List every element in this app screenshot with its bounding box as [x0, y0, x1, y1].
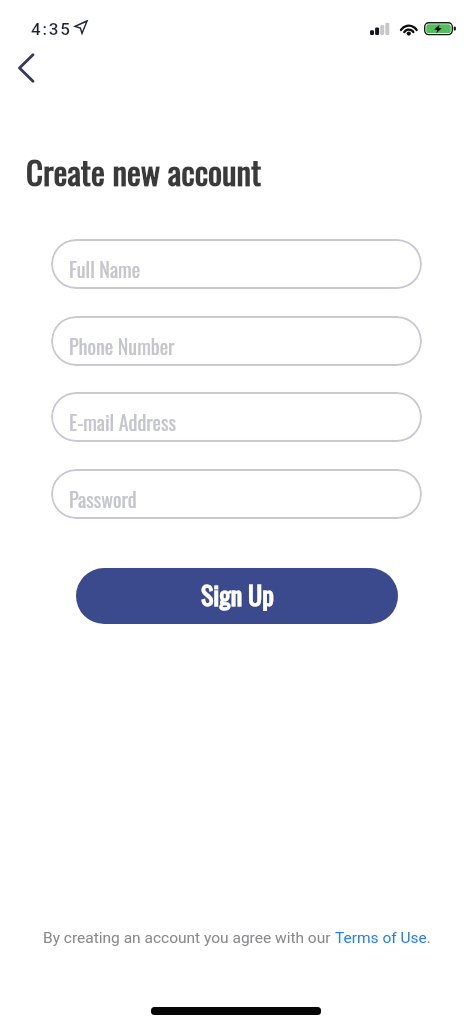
staticText: Password	[69, 484, 137, 514]
button[interactable]: Password	[51, 469, 422, 519]
staticText: By creating an account you agree with ou…	[43, 929, 335, 947]
staticText: Sign Up	[201, 575, 274, 614]
button[interactable]: Full Name	[51, 239, 422, 289]
button[interactable]: Phone Number	[51, 316, 422, 366]
button[interactable]: E-mail Address	[51, 392, 422, 442]
button[interactable]: Sign Up	[76, 568, 398, 624]
staticText: E-mail Address	[69, 407, 176, 437]
staticText: Create new account	[26, 147, 262, 196]
button[interactable]	[8, 44, 48, 88]
button[interactable]: Terms of Use.	[335, 929, 431, 947]
staticText: Terms of Use.	[335, 929, 431, 947]
staticText: 4:35	[31, 19, 72, 39]
staticText: Phone Number	[69, 331, 175, 361]
staticText: Full Name	[69, 254, 141, 284]
